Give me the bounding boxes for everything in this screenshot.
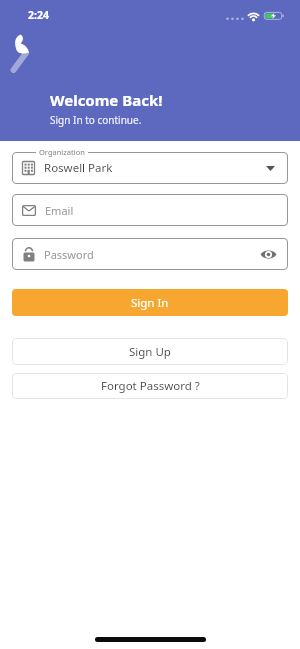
button[interactable]: Sign In [12, 289, 288, 316]
staticText: Forgot Password ? [101, 378, 200, 394]
button[interactable]: Roswell Park [12, 152, 288, 184]
staticText: Sign Up [129, 344, 171, 360]
staticText: Roswell Park [44, 160, 113, 176]
button[interactable]: Sign Up [12, 338, 288, 365]
button[interactable]: Email [12, 194, 288, 226]
staticText: Email [45, 203, 74, 218]
button[interactable]: Password [12, 238, 288, 270]
staticText: Sign In to continue. [50, 113, 142, 127]
staticText: 2:24 [28, 8, 49, 22]
staticText: Welcome Back! [50, 90, 163, 110]
staticText: Sign In [131, 295, 169, 311]
staticText: Password [44, 247, 94, 262]
button[interactable]: Forgot Password ? [12, 373, 288, 399]
staticText: Organization [39, 147, 85, 157]
